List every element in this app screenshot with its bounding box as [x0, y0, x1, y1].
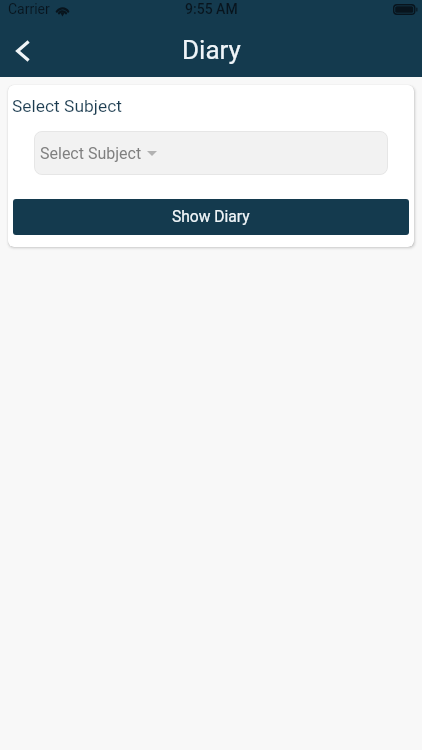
- staticText: Select Subject: [40, 144, 142, 163]
- staticText: 9:55 AM: [185, 1, 238, 17]
- button[interactable]: Select Subject: [34, 131, 388, 175]
- button[interactable]: Back: [0, 24, 48, 77]
- button[interactable]: Show Diary: [13, 199, 409, 235]
- staticText: Show Diary: [172, 208, 250, 226]
- staticText: Carrier: [8, 1, 50, 17]
- staticText: Diary: [182, 35, 241, 65]
- staticText: Select Subject: [12, 96, 122, 116]
